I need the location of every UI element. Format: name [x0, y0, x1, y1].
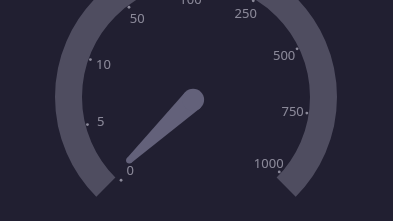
- button[interactable]: Speedometer gauge: [0, 0, 393, 221]
